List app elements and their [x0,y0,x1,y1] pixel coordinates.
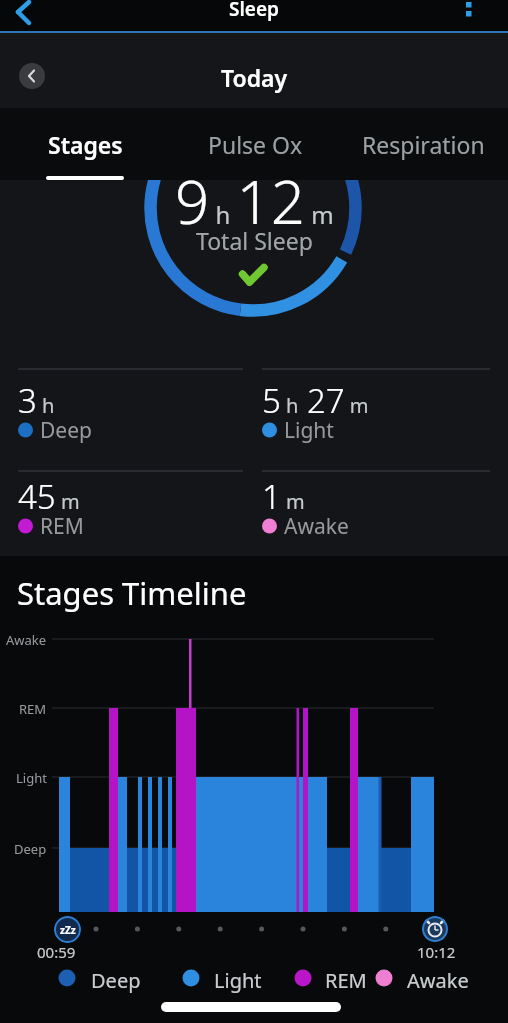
staticText: 00:59 [37,942,76,962]
staticText: Light [284,416,334,445]
staticText: Respiration [362,129,485,160]
staticText: Deep [14,840,47,858]
staticText: 45 m [18,474,80,519]
staticText: Sleep [229,0,279,22]
button[interactable]: Pulse Ox [198,120,314,172]
staticText: Awake [407,967,469,994]
button[interactable]: Stages [38,120,136,172]
staticText: Awake [6,631,47,649]
staticText: Stages Timeline [17,572,247,614]
staticText: 3 h [18,378,55,423]
staticText: Deep [40,416,92,445]
button[interactable] [8,0,44,27]
staticText: Light [16,769,47,787]
staticText: Deep [91,967,141,994]
staticText: 5 h 27 m [262,378,369,423]
staticText: Stages [48,129,123,160]
staticText: zZz [60,923,76,937]
staticText: Today [221,62,288,93]
button[interactable] [19,63,45,89]
button[interactable] [422,916,448,942]
staticText: 10:12 [417,942,456,962]
button[interactable]: Respiration [352,120,492,172]
button[interactable] [454,0,482,24]
staticText: Total Sleep [196,225,313,256]
staticText: Pulse Ox [208,129,303,160]
staticText: REM [40,512,84,541]
button[interactable]: zZz [54,916,81,943]
staticText: 9 h 12 m [175,180,334,242]
staticText: Light [214,967,262,994]
staticText: REM [19,700,47,718]
staticText: 1 m [262,474,305,519]
staticText: Awake [284,512,349,541]
staticText: REM [325,967,367,994]
